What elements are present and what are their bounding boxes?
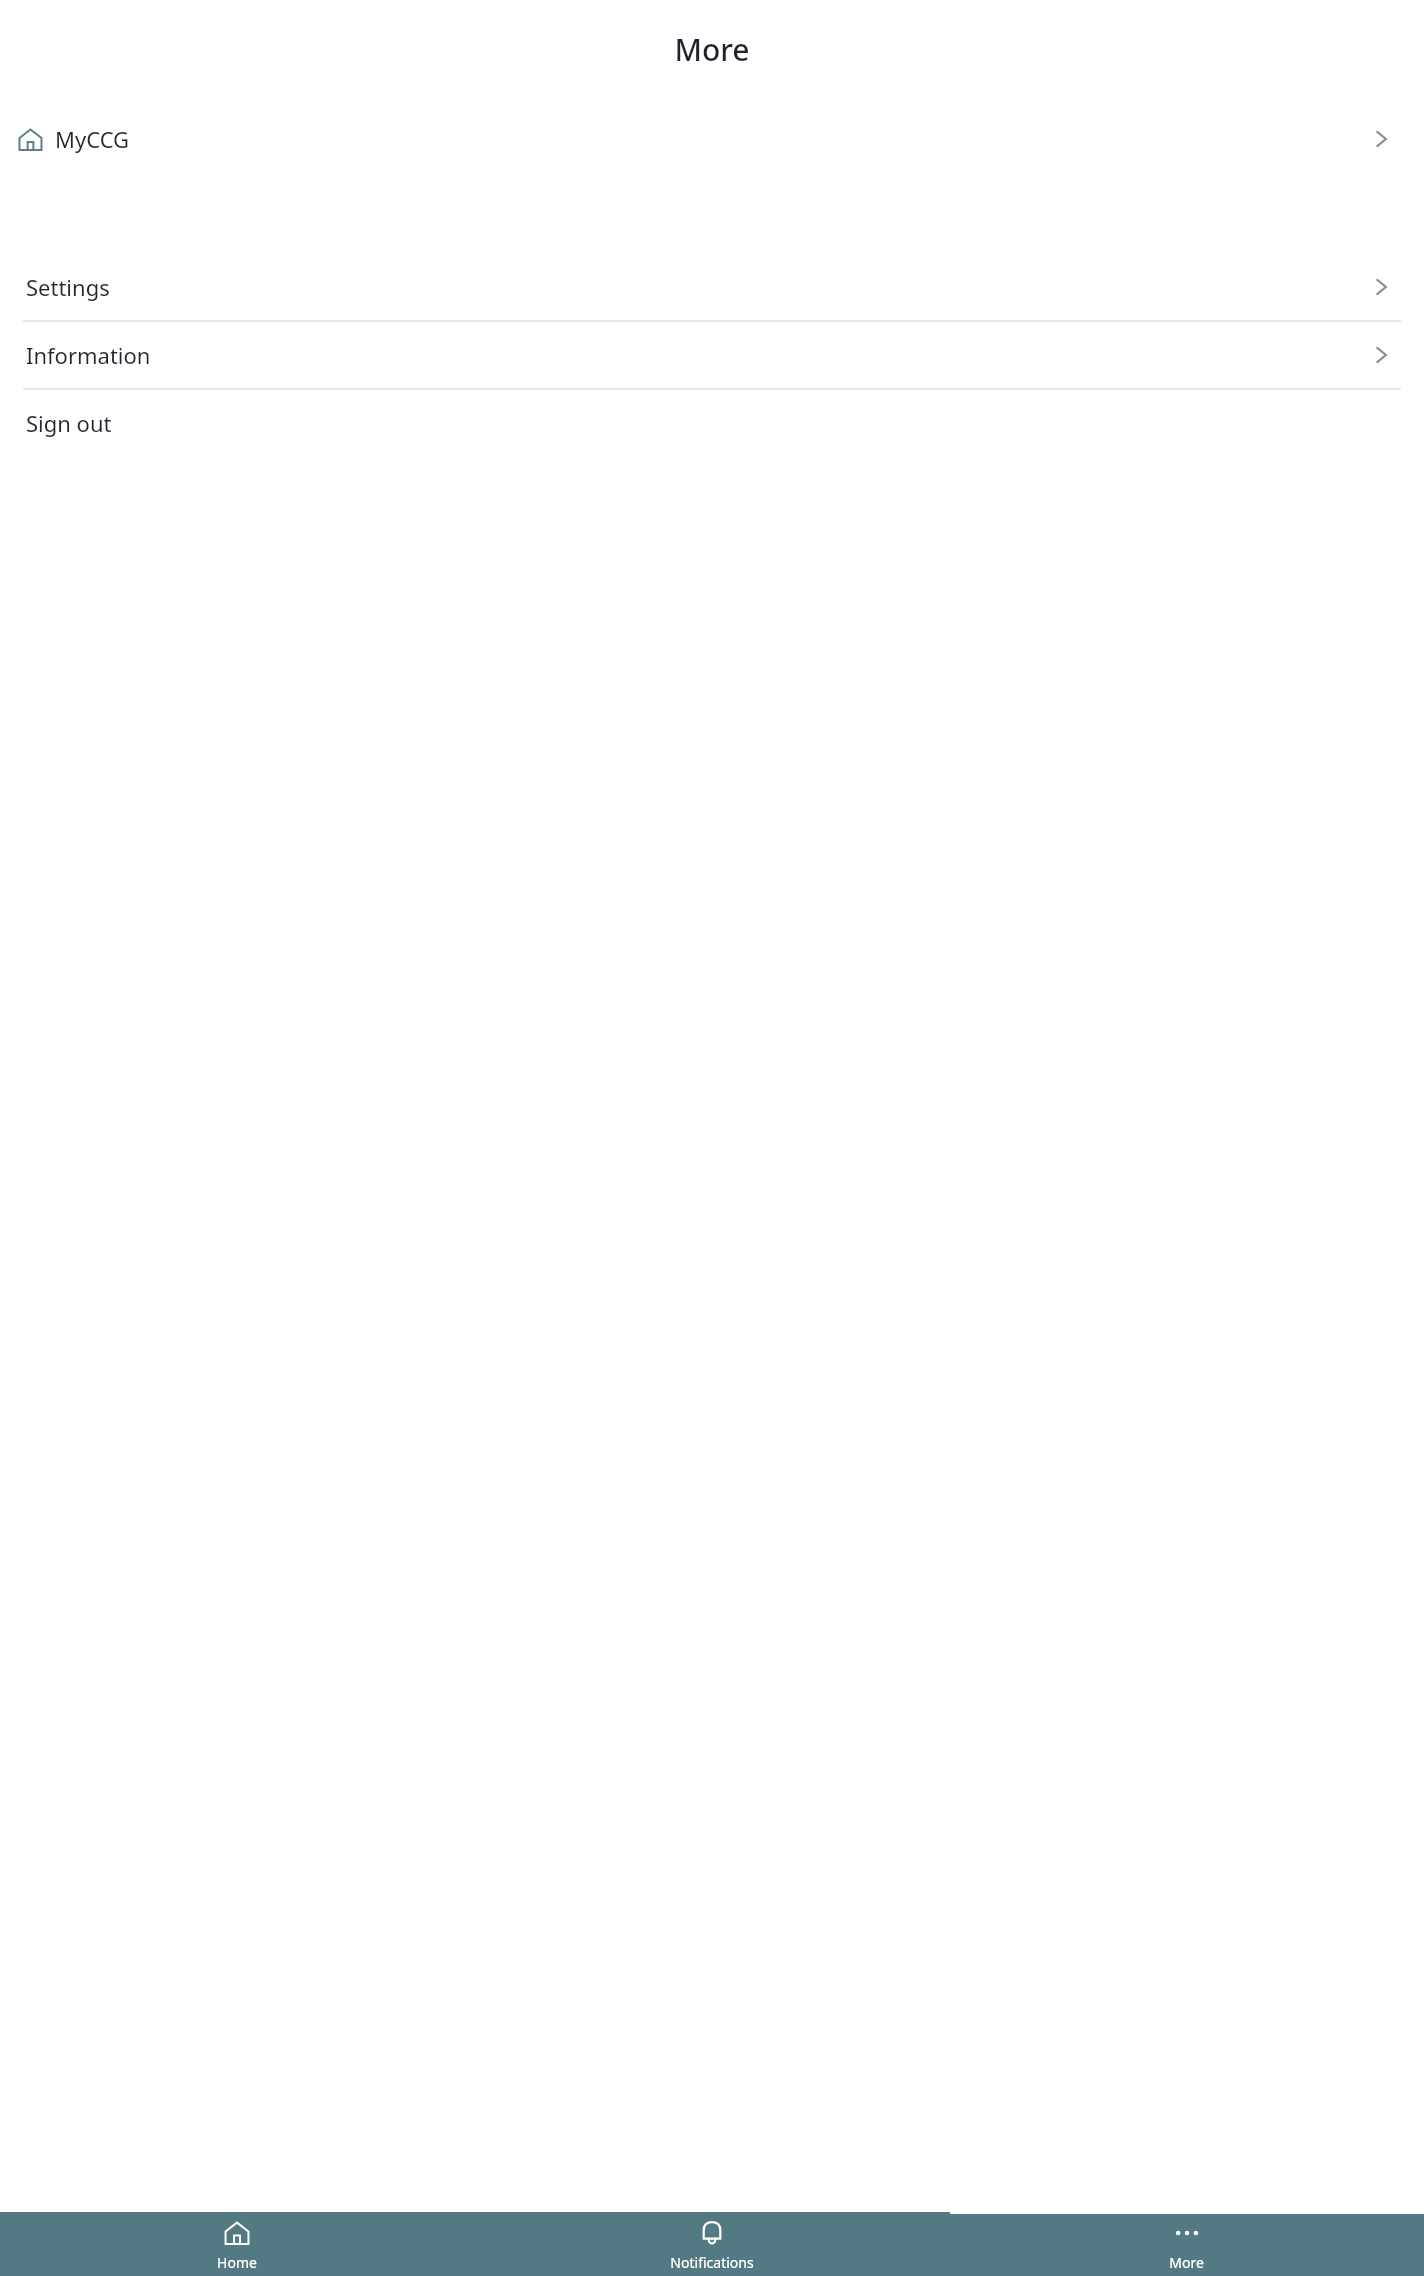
staticText: Settings bbox=[26, 272, 110, 302]
button[interactable]: Notifications bbox=[474, 2218, 949, 2272]
staticText: Home bbox=[217, 2253, 257, 2272]
staticText: MyCCG bbox=[55, 124, 130, 154]
staticText: Sign out bbox=[26, 408, 112, 438]
button[interactable]: MyCCG bbox=[0, 98, 1424, 180]
staticText: More bbox=[1169, 2253, 1204, 2272]
button[interactable]: Settings bbox=[0, 254, 1424, 320]
staticText: Notifications bbox=[670, 2253, 754, 2272]
staticText: More bbox=[674, 29, 750, 70]
button[interactable]: Home bbox=[0, 2218, 474, 2272]
button[interactable]: Information bbox=[0, 322, 1424, 388]
button[interactable]: More bbox=[949, 2218, 1424, 2272]
staticText: Information bbox=[26, 340, 151, 370]
button[interactable]: Sign out bbox=[0, 390, 1424, 456]
